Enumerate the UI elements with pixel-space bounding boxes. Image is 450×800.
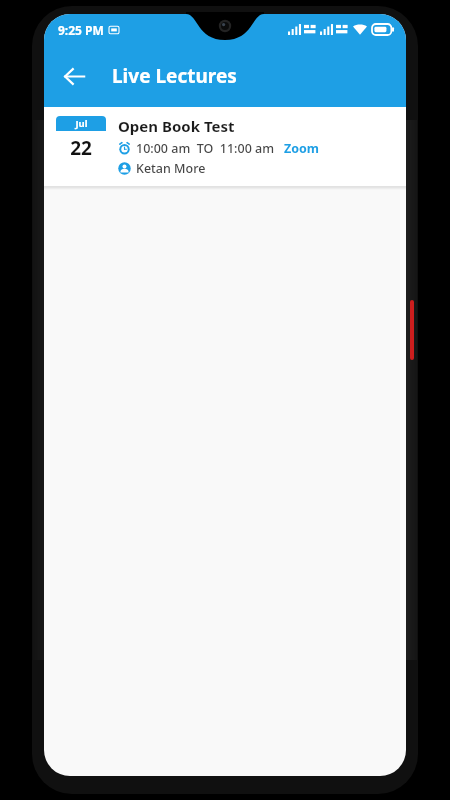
staticText: Ketan More (136, 160, 206, 177)
staticText: Open Book Test (118, 116, 235, 136)
other: Faculty (118, 162, 131, 175)
button[interactable]: Zoom (284, 140, 320, 157)
staticText: Jul (75, 117, 88, 130)
other: Time (118, 142, 131, 155)
staticText: 22 (70, 135, 92, 161)
button[interactable]: Back (52, 54, 96, 98)
staticText: 9:25 PM (58, 22, 104, 38)
button[interactable]: Jul (44, 107, 406, 186)
staticText: Live Lectures (112, 63, 237, 89)
staticText: Zoom (284, 140, 320, 157)
staticText: 10:00 am TO 11:00 am (136, 140, 275, 157)
